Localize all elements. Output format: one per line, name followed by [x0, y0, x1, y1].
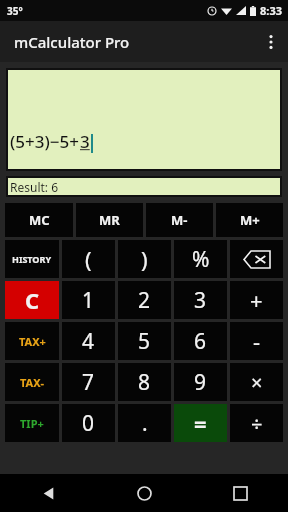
- button[interactable]: -: [230, 322, 283, 360]
- button[interactable]: TAX-: [5, 363, 59, 401]
- button[interactable]: More options: [254, 21, 288, 62]
- staticText: 4: [82, 327, 95, 356]
- staticText: 3: [80, 130, 90, 153]
- staticText: TAX+: [19, 334, 46, 349]
- button[interactable]: TAX+: [5, 322, 59, 360]
- button[interactable]: =: [174, 404, 227, 442]
- button[interactable]: M-: [146, 203, 213, 237]
- staticText: HISTORY: [12, 253, 52, 265]
- button[interactable]: %: [174, 240, 227, 278]
- button[interactable]: Back: [0, 474, 96, 512]
- staticText: C: [25, 285, 40, 315]
- button[interactable]: ÷: [230, 404, 283, 442]
- staticText: 3: [194, 286, 207, 315]
- staticText: 1: [82, 286, 95, 315]
- staticText: %: [192, 245, 210, 274]
- button[interactable]: 8: [118, 363, 171, 401]
- staticText: 5: [138, 327, 151, 356]
- button[interactable]: MR: [76, 203, 143, 237]
- staticText: 7: [82, 368, 95, 397]
- button[interactable]: M+: [216, 203, 283, 237]
- staticText: MC: [29, 211, 50, 229]
- button[interactable]: +: [230, 281, 283, 319]
- staticText: MR: [99, 211, 120, 229]
- staticText: ÷: [251, 410, 263, 437]
- button[interactable]: (: [62, 240, 115, 278]
- staticText: M+: [240, 211, 260, 229]
- button[interactable]: C: [5, 281, 59, 319]
- button[interactable]: TIP+: [5, 404, 59, 442]
- staticText: ×: [251, 369, 263, 396]
- staticText: 9: [194, 368, 207, 397]
- staticText: 2: [138, 286, 151, 315]
- button[interactable]: 2: [118, 281, 171, 319]
- button[interactable]: .: [118, 404, 171, 442]
- button[interactable]: 9: [174, 363, 227, 401]
- button[interactable]: Recent apps: [192, 474, 288, 512]
- button[interactable]: 7: [62, 363, 115, 401]
- button[interactable]: HISTORY: [5, 240, 59, 278]
- staticText: TAX-: [20, 375, 45, 390]
- staticText: 35°: [7, 4, 23, 18]
- button[interactable]: 0: [62, 404, 115, 442]
- button[interactable]: 1: [62, 281, 115, 319]
- button[interactable]: MC: [5, 203, 73, 237]
- staticText: ): [141, 244, 148, 274]
- button[interactable]: (5+3)−5+: [6, 68, 282, 171]
- staticText: 8:33: [260, 3, 282, 18]
- staticText: 6: [194, 327, 207, 356]
- staticText: mCalculator Pro: [14, 32, 130, 52]
- button[interactable]: 6: [174, 322, 227, 360]
- staticText: +: [250, 285, 263, 315]
- staticText: M-: [171, 211, 188, 229]
- button[interactable]: 5: [118, 322, 171, 360]
- staticText: (5+3)−5+: [10, 130, 80, 153]
- staticText: =: [194, 408, 207, 438]
- staticText: 8: [138, 368, 151, 397]
- staticText: -: [253, 326, 261, 356]
- button[interactable]: 3: [174, 281, 227, 319]
- button[interactable]: ): [118, 240, 171, 278]
- staticText: (: [85, 244, 92, 274]
- button[interactable]: Backspace: [230, 240, 283, 278]
- button[interactable]: Result: 6: [6, 176, 282, 197]
- staticText: 0: [82, 409, 95, 438]
- staticText: .: [142, 409, 148, 438]
- staticText: TIP+: [20, 416, 44, 431]
- button[interactable]: 4: [62, 322, 115, 360]
- button[interactable]: Home: [96, 474, 192, 512]
- staticText: Result: 6: [10, 179, 59, 195]
- button[interactable]: ×: [230, 363, 283, 401]
